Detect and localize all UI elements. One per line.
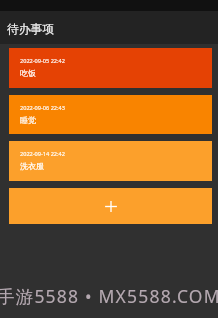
button[interactable]: 2022-09-06 22:43 [9, 95, 212, 134]
button[interactable]: 2022-09-05 22:42 [9, 48, 212, 88]
staticText: 洗衣服 [20, 161, 44, 171]
button[interactable]: Add todo [9, 188, 212, 224]
staticText: 待办事项 [7, 22, 54, 37]
staticText: 2022-09-14 22:42 [20, 150, 65, 158]
staticText: 手游5588 • MX5588.COM [0, 284, 218, 308]
button[interactable]: 2022-09-14 22:42 [9, 141, 212, 181]
staticText: 吃饭 [20, 68, 36, 78]
staticText: 2022-09-06 22:43 [20, 104, 65, 112]
staticText: 睡觉 [20, 115, 36, 125]
staticText: 2022-09-05 22:42 [20, 57, 65, 65]
